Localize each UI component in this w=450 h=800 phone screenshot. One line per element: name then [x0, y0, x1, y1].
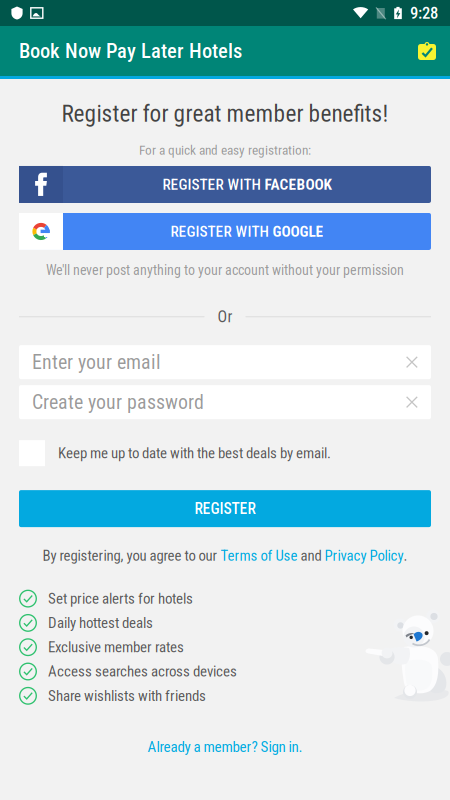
staticText: REGISTER WITH	[170, 222, 272, 240]
staticText: Daily hottest deals	[48, 614, 153, 632]
button[interactable]: REGISTER WITH	[19, 213, 431, 250]
staticText: .	[403, 547, 407, 564]
button[interactable]: My trips checklist	[407, 31, 447, 71]
staticText: Terms of Use	[220, 547, 297, 564]
staticText: REGISTER	[194, 499, 255, 518]
staticText: GOOGLE	[272, 222, 323, 240]
button[interactable]: Privacy Policy	[324, 547, 403, 564]
staticText: By registering, you agree to our	[42, 547, 220, 564]
staticText: Access searches across devices	[48, 663, 237, 680]
staticText: Already a member? Sign in.	[147, 738, 302, 756]
staticText: and	[297, 547, 324, 564]
staticText: Keep me up to date with the best deals b…	[58, 444, 331, 462]
staticText: Create your password	[32, 390, 204, 414]
staticText: Enter your email	[32, 350, 161, 374]
staticText: 9:28	[410, 3, 438, 23]
button[interactable]: REGISTER WITH	[19, 166, 431, 203]
staticText: FACEBOOK	[264, 175, 331, 193]
staticText: Register for great member benefits!	[61, 100, 388, 127]
staticText: We'll never post anything to your accoun…	[46, 262, 404, 278]
staticText: For a quick and easy registration:	[139, 142, 311, 158]
staticText: Privacy Policy	[324, 547, 403, 564]
button[interactable]: Keep me up to date with the best deals b…	[19, 439, 431, 467]
staticText: Book Now Pay Later Hotels	[19, 39, 242, 63]
staticText: REGISTER WITH	[162, 175, 264, 193]
staticText: Set price alerts for hotels	[48, 590, 193, 607]
button[interactable]: REGISTER	[19, 490, 431, 527]
staticText: Exclusive member rates	[48, 638, 184, 656]
staticText: Share wishlists with friends	[48, 687, 206, 705]
button[interactable]: Terms of Use	[220, 547, 297, 564]
button[interactable]: Already a member? Sign in.	[147, 731, 302, 763]
staticText: Or	[217, 307, 232, 326]
